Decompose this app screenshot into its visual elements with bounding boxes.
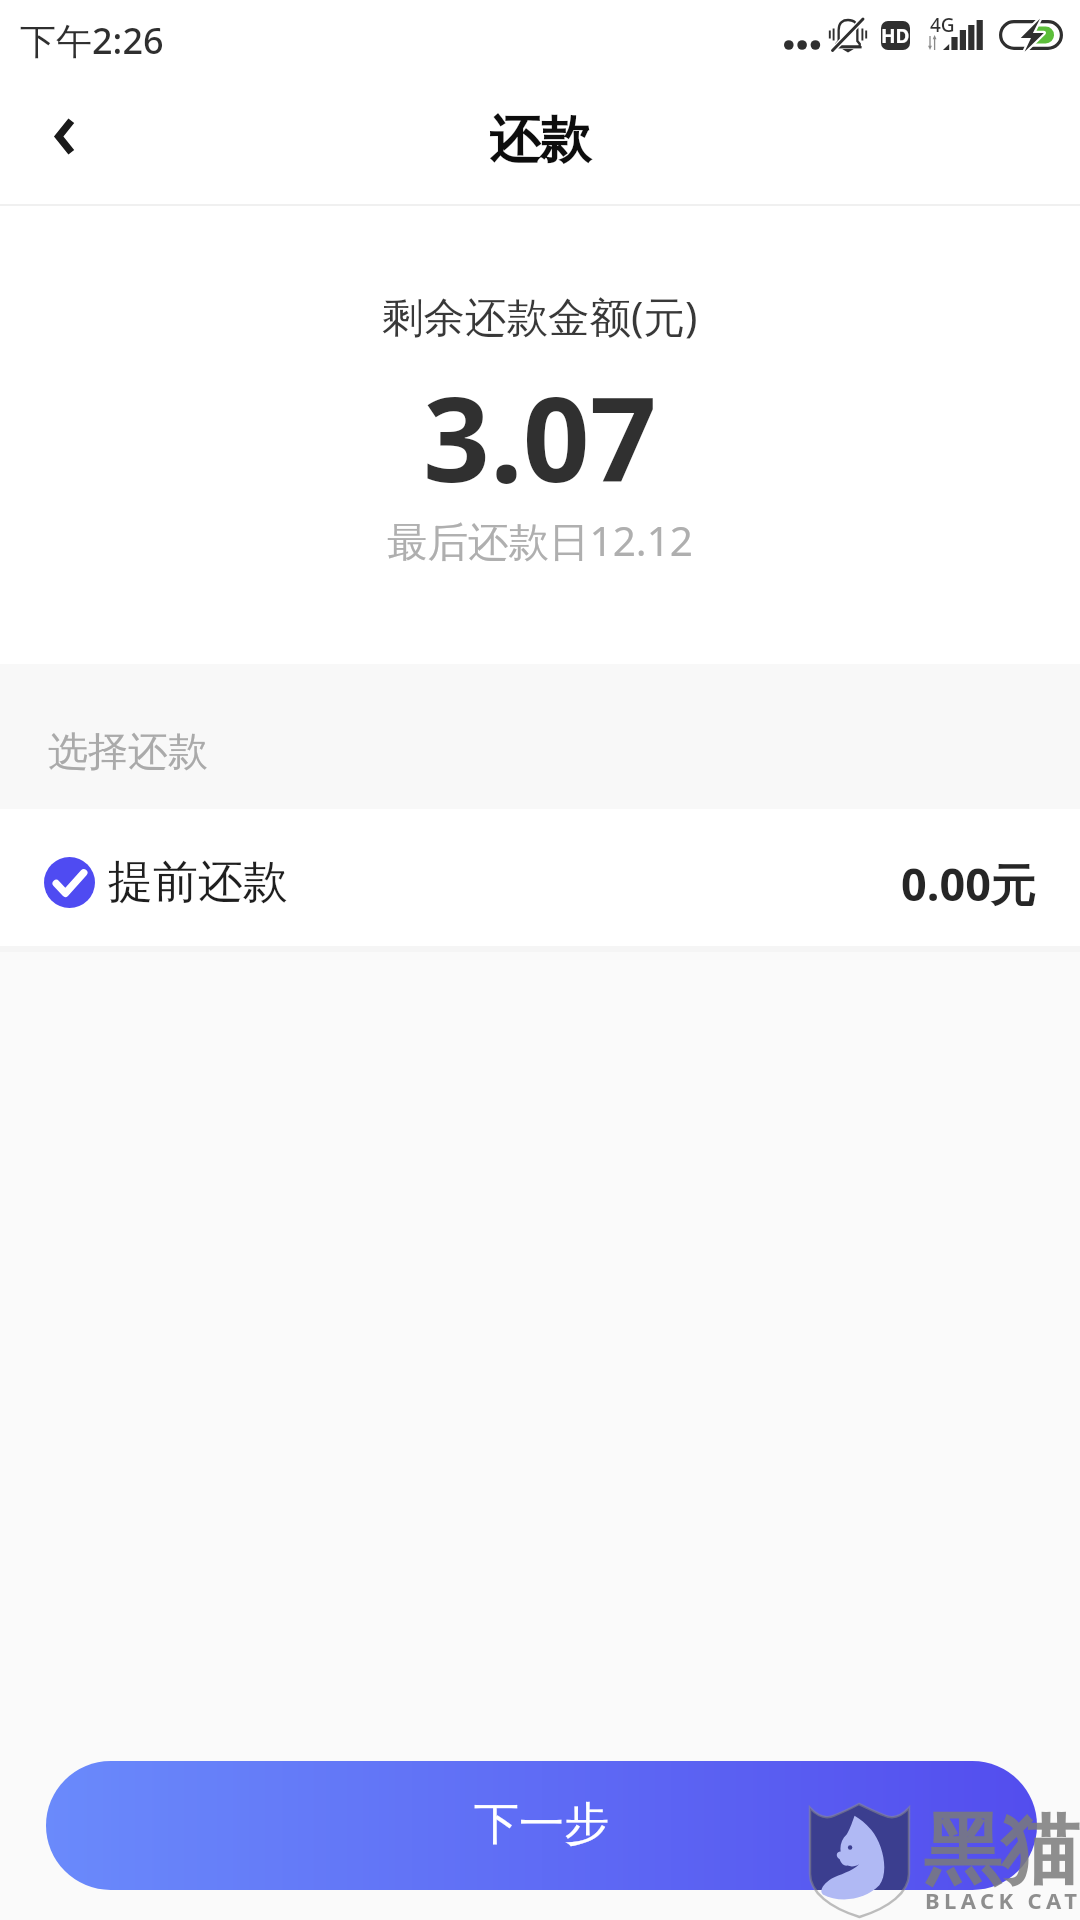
staticText: BLACK CAT <box>925 1885 1080 1915</box>
staticText: 下一步 <box>474 1796 609 1853</box>
staticText: 0.00元 <box>901 853 1036 914</box>
staticText: HD <box>881 23 910 49</box>
staticText: 还款 <box>489 108 591 172</box>
staticText: 下午2:26 <box>20 16 164 65</box>
staticText: 4G <box>930 12 955 38</box>
staticText: 剩余还款金额(元) <box>382 288 698 345</box>
staticText: 提前还款 <box>108 854 288 911</box>
staticText: 选择还款 <box>48 726 208 776</box>
staticText: 3.07 <box>423 357 657 516</box>
staticText: 黑猫 <box>923 1801 1079 1899</box>
staticText: 最后还款日12.12 <box>387 513 694 568</box>
button[interactable]: 提前还款 <box>0 809 1080 946</box>
button[interactable]: Back <box>10 81 120 191</box>
button[interactable]: 下一步 <box>46 1761 1037 1890</box>
